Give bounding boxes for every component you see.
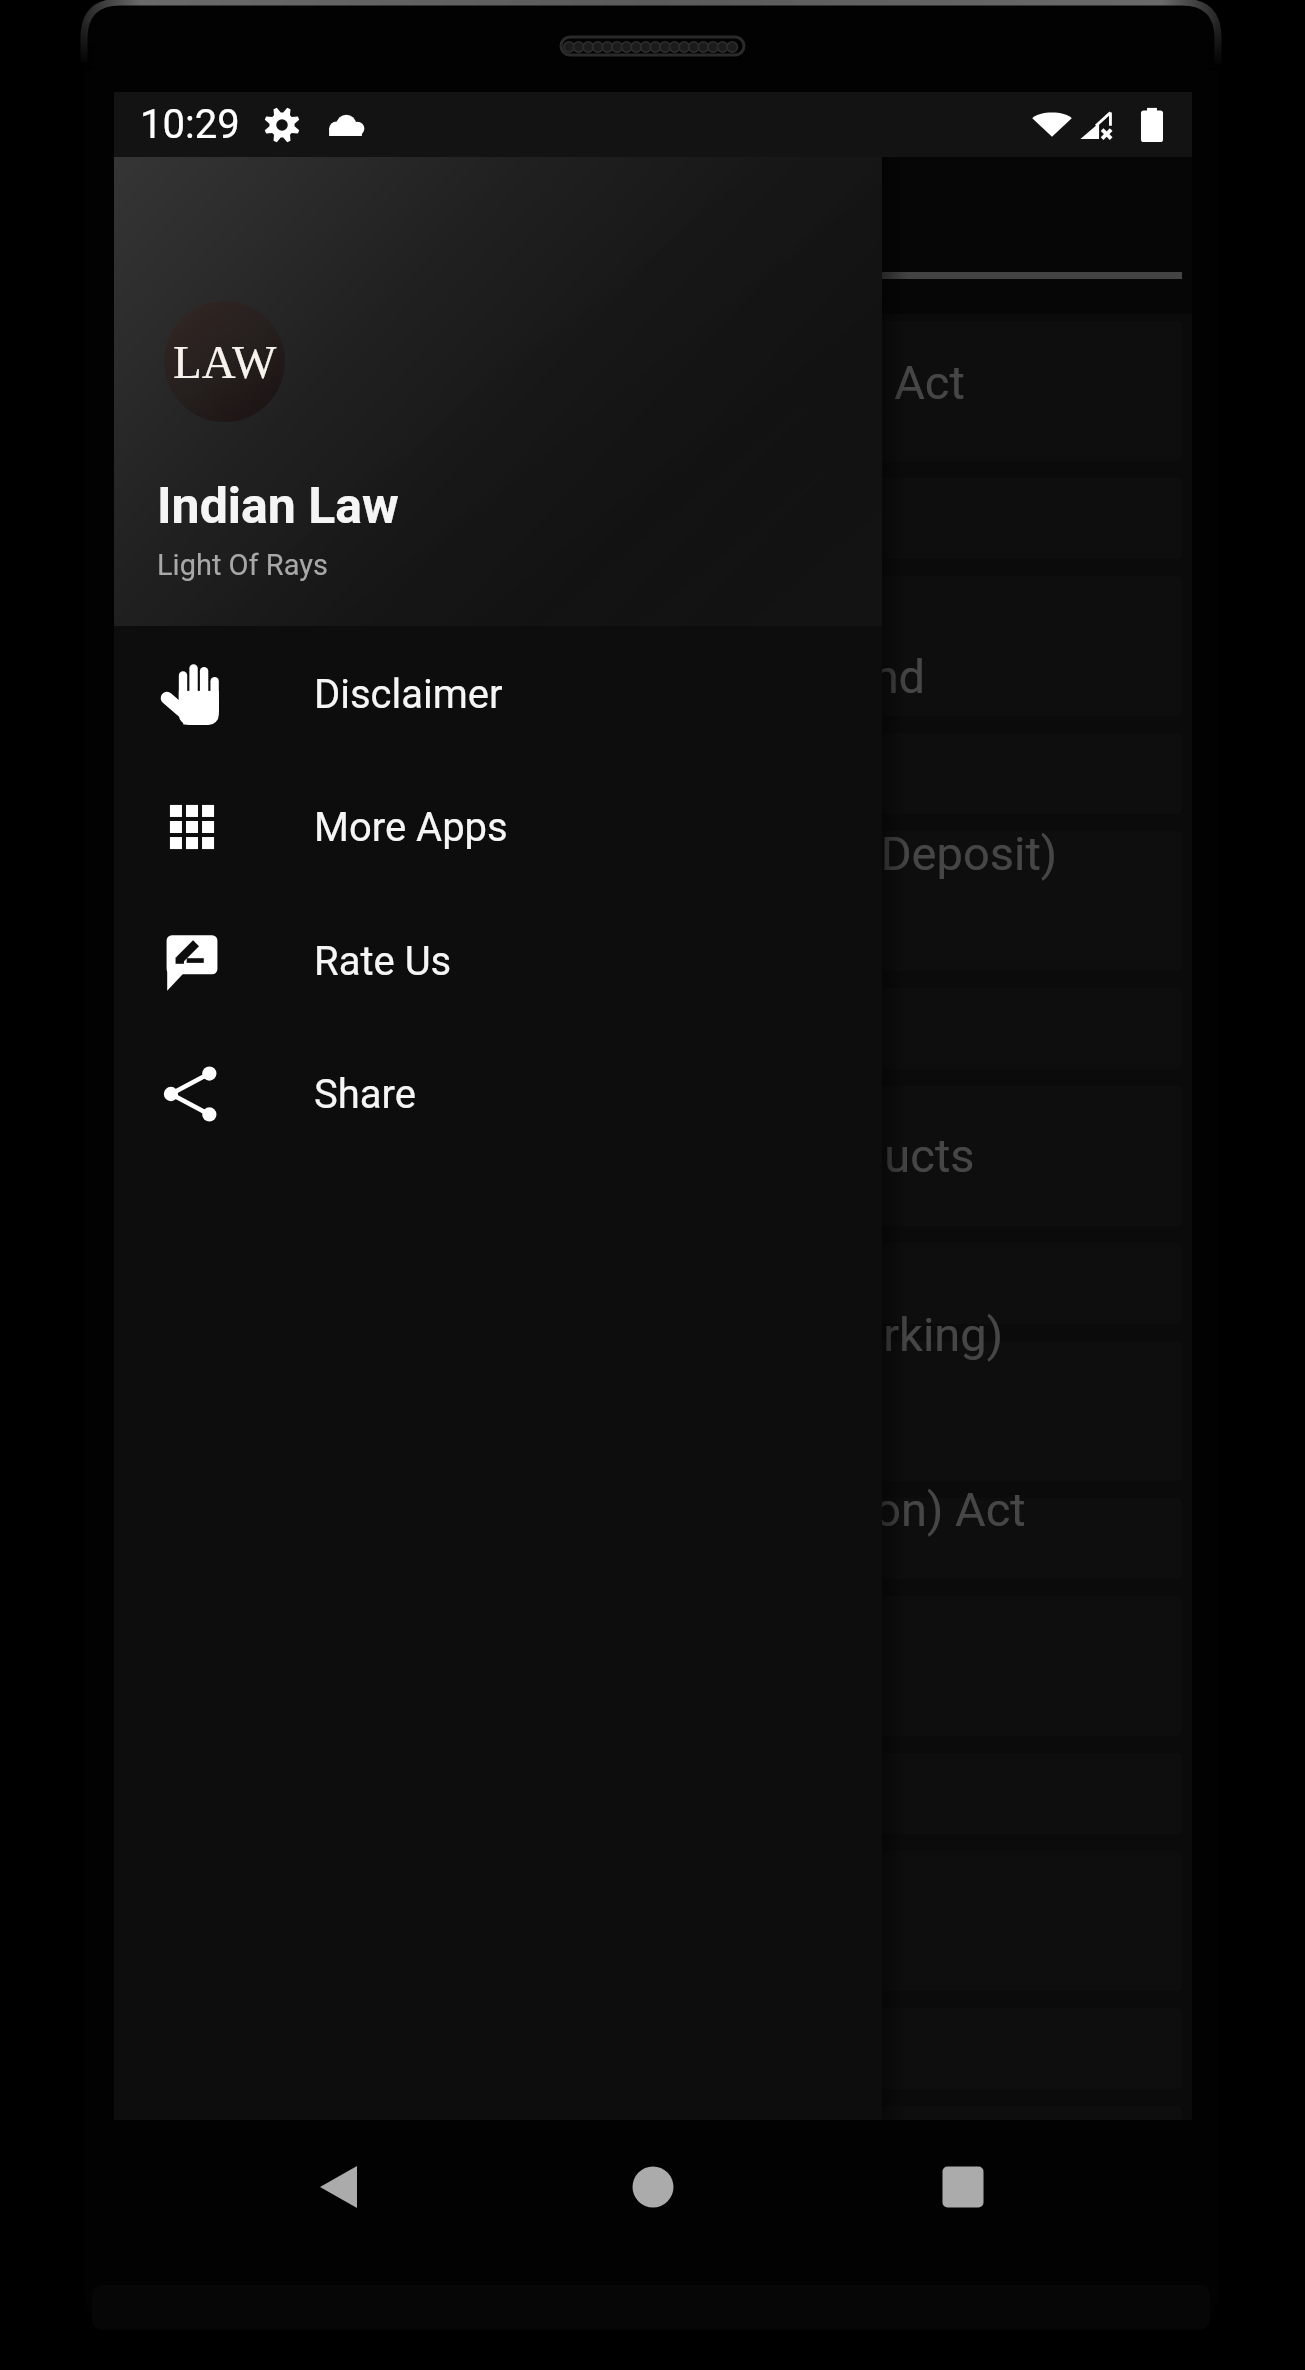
button[interactable] bbox=[114, 478, 1182, 559]
button[interactable] bbox=[114, 321, 1182, 461]
button[interactable]: Rate Us bbox=[114, 894, 882, 1028]
staticText: Light Of Rays bbox=[157, 548, 328, 582]
staticText: Share bbox=[314, 1071, 416, 1118]
button[interactable] bbox=[114, 576, 1182, 716]
staticText: 10:29 bbox=[140, 101, 240, 148]
button[interactable]: Share bbox=[114, 1028, 882, 1160]
staticText: The Negotiable Instruments Acts and bbox=[148, 649, 926, 704]
staticText: Sale of Goods and Other Used Products bbox=[148, 1128, 975, 1183]
button[interactable]: More Apps bbox=[114, 760, 882, 894]
staticText: Disclaimer bbox=[314, 671, 503, 718]
staticText: Protection of Women Act (Security Deposi… bbox=[148, 826, 1058, 881]
button[interactable] bbox=[114, 1498, 1182, 1579]
staticText: Indian Law bbox=[157, 477, 399, 536]
button[interactable]: Home bbox=[617, 2151, 689, 2223]
button[interactable] bbox=[114, 733, 1182, 814]
button[interactable]: Recents bbox=[927, 2151, 999, 2223]
staticText: The Indian Penal Code, 1860 Indian Act bbox=[148, 355, 965, 410]
staticText: Consumer Goods Welfare (Protection) Act bbox=[148, 1482, 1026, 1537]
button[interactable] bbox=[114, 1086, 1182, 1226]
staticText: Rate Us bbox=[314, 938, 452, 985]
staticText: More Apps bbox=[314, 804, 508, 851]
button[interactable] bbox=[114, 988, 1182, 1069]
button[interactable]: Disclaimer bbox=[114, 628, 882, 760]
button[interactable] bbox=[114, 1341, 1182, 1481]
button[interactable] bbox=[114, 831, 1182, 971]
button[interactable]: Back bbox=[303, 2151, 375, 2223]
staticText: Motor Vehicles Rules and Laws (Parking) bbox=[148, 1307, 1004, 1362]
staticText: LAW bbox=[173, 336, 277, 388]
